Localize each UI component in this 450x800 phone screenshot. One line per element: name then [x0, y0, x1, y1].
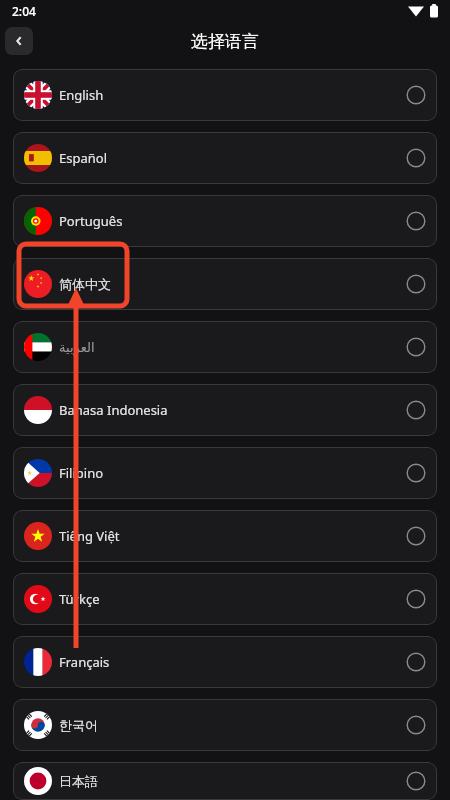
staticText: العربية [59, 340, 95, 355]
staticText: Português [59, 212, 123, 230]
button[interactable]: 日本語 [13, 762, 437, 800]
staticText: Español [59, 149, 107, 167]
staticText: 2:04 [12, 3, 36, 19]
staticText: 选择语言 [191, 31, 259, 52]
button[interactable]: Filipino [13, 447, 437, 499]
staticText: 简体中文 [59, 276, 111, 292]
button[interactable]: English [13, 69, 437, 121]
staticText: English [59, 86, 104, 104]
button[interactable]: Português [13, 195, 437, 247]
button[interactable]: 简体中文 [13, 258, 437, 310]
button[interactable]: Back [5, 27, 33, 55]
staticText: Bahasa Indonesia [59, 401, 168, 419]
button[interactable]: Español [13, 132, 437, 184]
staticText: 日本語 [59, 773, 98, 789]
staticText: Filipino [59, 464, 104, 482]
staticText: 한국어 [59, 717, 98, 733]
button[interactable]: العربية [13, 321, 437, 373]
button[interactable]: Français [13, 636, 437, 688]
button[interactable]: 한국어 [13, 699, 437, 751]
staticText: Tiếng Việt [59, 527, 120, 545]
staticText: Français [59, 653, 110, 671]
staticText: Türkçe [59, 590, 100, 608]
button[interactable]: Tiếng Việt [13, 510, 437, 562]
button[interactable]: Türkçe [13, 573, 437, 625]
button[interactable]: Bahasa Indonesia [13, 384, 437, 436]
